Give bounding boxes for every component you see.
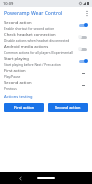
staticText: Start playing: [4, 56, 29, 62]
staticText: Common actions for all players (Experime…: [4, 51, 74, 55]
button[interactable]: Check headset connection: [0, 31, 92, 43]
button[interactable]: More options: [82, 7, 92, 19]
button[interactable]: Start playing: [0, 55, 92, 67]
button[interactable]: Home: [37, 177, 55, 179]
staticText: Actions testing: [4, 94, 33, 99]
staticText: 10:09: [3, 1, 14, 6]
staticText: First action: [4, 68, 26, 74]
staticText: Disable actions when headset disconnecte…: [4, 39, 70, 43]
staticText: Second action: [4, 80, 32, 86]
staticText: Second action: [4, 20, 32, 26]
staticText: First action: [14, 105, 35, 110]
button[interactable]: Second action: [0, 79, 92, 91]
button[interactable]: Back: [18, 176, 22, 180]
staticText: Second action: [55, 105, 81, 110]
button[interactable]: Second action: [0, 19, 92, 31]
staticText: Play/Pause: [4, 75, 21, 79]
staticText: Previous: [4, 87, 17, 91]
button[interactable]: Second action: [48, 103, 88, 112]
button[interactable]: First action: [4, 103, 44, 112]
staticText: Enable shortcut for second action: [4, 27, 55, 31]
button[interactable]: First action: [0, 67, 92, 79]
staticText: Check headset connection: [4, 32, 56, 38]
staticText: Android media actions: [4, 44, 49, 50]
staticText: Poweramp Wear Control: [4, 10, 63, 17]
staticText: Start playing before Next / Prev action: [4, 63, 61, 67]
button[interactable]: Android media actions: [0, 43, 92, 55]
